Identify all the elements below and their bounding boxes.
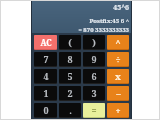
staticText: 6 [91, 70, 97, 82]
staticText: 5 [67, 70, 73, 82]
button[interactable]: 3 [83, 86, 105, 100]
button[interactable]: – [107, 86, 129, 100]
staticText: = [91, 104, 97, 116]
staticText: ) [92, 36, 96, 48]
button[interactable]: AC [34, 35, 57, 49]
staticText: 3 [91, 87, 97, 99]
button[interactable]: + [107, 103, 129, 117]
button[interactable]: ^ [107, 35, 129, 49]
staticText: x [115, 70, 121, 82]
button[interactable]: 7 [34, 52, 57, 66]
staticText: = 870 3333333333 [34, 26, 129, 33]
button[interactable]: 6 [83, 69, 105, 83]
staticText: AC [40, 37, 52, 48]
button[interactable]: ) [83, 35, 105, 49]
button[interactable]: 1 [34, 86, 57, 100]
button[interactable]: x [107, 69, 129, 83]
button[interactable]: . [59, 103, 81, 117]
staticText: 7 [43, 53, 49, 65]
staticText: ÷ [115, 53, 121, 65]
button[interactable]: ( [59, 35, 81, 49]
staticText: 1 [43, 87, 49, 99]
staticText: + [115, 104, 121, 116]
staticText: 4 [43, 70, 49, 82]
button[interactable]: ÷ [107, 52, 129, 66]
staticText: . [69, 104, 72, 116]
staticText: 8 [67, 53, 73, 65]
staticText: 2 [67, 87, 73, 99]
staticText: 45^6 [34, 3, 129, 13]
button[interactable]: 5 [59, 69, 81, 83]
staticText: ^ [115, 36, 121, 48]
staticText: ( [68, 36, 72, 48]
button[interactable]: 8 [59, 52, 81, 66]
button[interactable]: = [83, 103, 105, 117]
staticText: – [116, 87, 121, 99]
button[interactable]: 4 [34, 69, 57, 83]
staticText: 9 [91, 53, 97, 65]
staticText: Postfix:45 6 ^ [34, 17, 129, 25]
button[interactable]: 2 [59, 86, 81, 100]
staticText: 0 [43, 104, 49, 116]
button[interactable]: 9 [83, 52, 105, 66]
button[interactable]: 0 [34, 103, 57, 117]
